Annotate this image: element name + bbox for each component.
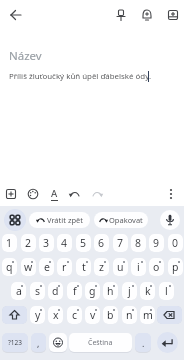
button[interactable]: y <box>30 306 45 324</box>
button[interactable] <box>4 209 26 231</box>
button[interactable] <box>165 188 177 200</box>
button[interactable]: w <box>21 258 36 276</box>
staticText: 9 <box>153 236 160 250</box>
button[interactable]: m <box>140 306 155 324</box>
button[interactable]: p <box>168 258 183 276</box>
button[interactable]: k <box>140 282 155 300</box>
button[interactable]: 3 <box>39 234 54 252</box>
button[interactable]: 1 <box>2 234 17 252</box>
staticText: , <box>37 337 40 349</box>
button[interactable]: n <box>122 306 137 324</box>
staticText: 6 <box>98 236 105 250</box>
staticText: 4 <box>61 236 68 250</box>
button[interactable]: b <box>103 306 118 324</box>
staticText: Název <box>9 48 42 63</box>
button[interactable]: 5 <box>76 234 91 252</box>
staticText: v <box>90 308 96 322</box>
button[interactable]: x <box>48 306 63 324</box>
button[interactable]: i <box>131 258 146 276</box>
staticText: 2 <box>25 236 32 250</box>
staticText: c <box>72 308 78 322</box>
button[interactable]: u <box>113 258 128 276</box>
button[interactable] <box>157 306 182 324</box>
staticText: Příliš žluťoučký kůň úpěl ďábelské ódy. <box>9 71 152 82</box>
staticText: b <box>107 308 114 322</box>
button[interactable] <box>157 332 178 353</box>
staticText: a <box>16 284 22 298</box>
staticText: 0 <box>172 236 179 250</box>
staticText: g <box>89 284 96 298</box>
staticText: q <box>6 260 13 274</box>
staticText: j <box>128 284 131 298</box>
staticText: r <box>62 260 67 274</box>
button[interactable]: Čeština <box>69 333 132 352</box>
staticText: t <box>82 260 86 274</box>
button[interactable]: 9 <box>149 234 164 252</box>
button[interactable] <box>27 188 39 200</box>
staticText: Čeština <box>88 338 113 348</box>
button[interactable] <box>2 306 27 324</box>
button[interactable]: z <box>94 258 109 276</box>
staticText: 3 <box>43 236 50 250</box>
button[interactable] <box>91 188 103 200</box>
button[interactable]: 2 <box>21 234 36 252</box>
staticText: p <box>172 260 179 274</box>
staticText: z <box>99 260 104 274</box>
button[interactable]: r <box>57 258 72 276</box>
staticText: l <box>165 284 168 298</box>
staticText: 1 <box>6 236 13 250</box>
staticText: A <box>51 187 58 200</box>
staticText: h <box>107 284 114 298</box>
button[interactable] <box>160 210 180 230</box>
button[interactable]: q <box>2 258 17 276</box>
button[interactable]: 8 <box>131 234 146 252</box>
button[interactable]: g <box>85 282 100 300</box>
staticText: f <box>73 284 77 298</box>
button[interactable]: f <box>67 282 82 300</box>
staticText: 5 <box>80 236 87 250</box>
staticText: o <box>153 260 160 274</box>
staticText: Opakovat <box>109 215 143 225</box>
staticText: s <box>35 284 41 298</box>
button[interactable] <box>166 8 180 22</box>
button[interactable]: h <box>103 282 118 300</box>
button[interactable]: o <box>149 258 164 276</box>
button[interactable]: 4 <box>57 234 72 252</box>
button[interactable] <box>49 333 67 352</box>
staticText: 7 <box>117 236 124 250</box>
staticText: . <box>142 337 145 349</box>
button[interactable]: Vrátit zpět <box>29 212 90 228</box>
button[interactable]: , <box>31 333 46 352</box>
staticText: k <box>145 284 151 298</box>
button[interactable] <box>5 188 17 200</box>
staticText: e <box>44 260 50 274</box>
button[interactable]: c <box>67 306 82 324</box>
button[interactable] <box>114 8 128 22</box>
button[interactable] <box>69 188 81 200</box>
staticText: u <box>117 260 124 274</box>
button[interactable]: . <box>135 333 151 352</box>
button[interactable]: 6 <box>94 234 109 252</box>
button[interactable]: v <box>85 306 100 324</box>
staticText: x <box>53 308 59 322</box>
button[interactable]: A <box>49 187 60 201</box>
staticText: w <box>24 260 33 274</box>
staticText: ?123 <box>8 338 22 347</box>
button[interactable]: d <box>48 282 63 300</box>
button[interactable] <box>8 7 24 23</box>
button[interactable]: e <box>39 258 54 276</box>
button[interactable]: s <box>30 282 45 300</box>
staticText: m <box>143 308 153 322</box>
button[interactable]: 0 <box>168 234 183 252</box>
button[interactable]: 7 <box>113 234 128 252</box>
button[interactable]: a <box>11 282 26 300</box>
button[interactable]: l <box>159 282 174 300</box>
button[interactable]: Opakovat <box>94 212 148 228</box>
staticText: d <box>52 284 59 298</box>
button[interactable]: ?123 <box>2 333 28 352</box>
button[interactable] <box>140 8 154 22</box>
button[interactable]: t <box>76 258 91 276</box>
staticText: y <box>35 308 41 322</box>
staticText: 8 <box>135 236 142 250</box>
button[interactable]: j <box>122 282 137 300</box>
